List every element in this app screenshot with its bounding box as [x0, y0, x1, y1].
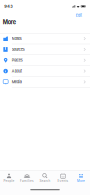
- button[interactable]: Sources: [0, 44, 90, 55]
- staticText: Edit: [76, 13, 82, 18]
- staticText: More: [77, 179, 85, 183]
- staticText: Families: [20, 179, 34, 183]
- staticText: Sources: [12, 47, 25, 52]
- staticText: More: [3, 19, 16, 26]
- staticText: People: [3, 179, 14, 183]
- button[interactable]: More: [72, 171, 90, 184]
- button[interactable]: Notes: [0, 33, 90, 44]
- staticText: Media: [12, 80, 22, 84]
- button[interactable]: Search: [36, 171, 54, 184]
- staticText: Search: [39, 179, 50, 183]
- staticText: About: [12, 69, 22, 73]
- button[interactable]: About: [0, 66, 90, 77]
- staticText: Events: [57, 179, 68, 183]
- staticText: Notes: [12, 36, 22, 41]
- button[interactable]: Places: [0, 55, 90, 66]
- button[interactable]: Families: [18, 171, 36, 184]
- button[interactable]: Media: [0, 77, 90, 87]
- button[interactable]: People: [0, 171, 18, 184]
- button[interactable]: Events: [54, 171, 72, 184]
- staticText: Places: [12, 58, 23, 62]
- button[interactable]: Edit: [74, 12, 83, 19]
- staticText: 9:43: [4, 4, 12, 9]
